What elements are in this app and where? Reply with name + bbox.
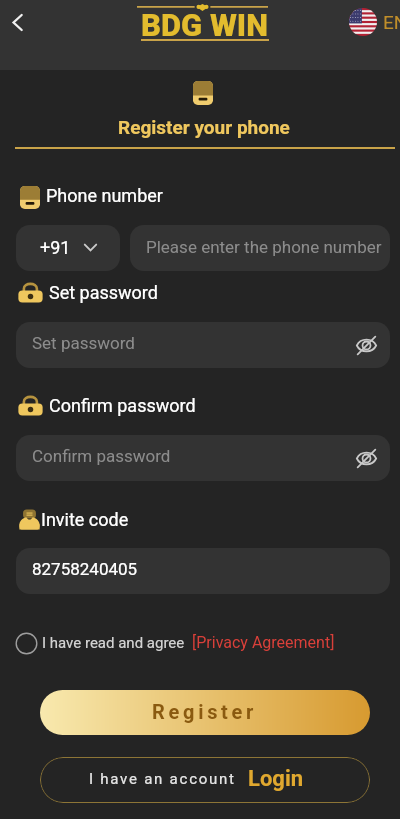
staticText: [Privacy Agreement] [192, 633, 335, 652]
button[interactable]: Language EN [349, 8, 400, 36]
button[interactable]: Set password [16, 322, 390, 368]
staticText: Please enter the phone number [146, 237, 382, 257]
button[interactable]: Back [0, 2, 37, 42]
staticText: 82758240405 [32, 559, 138, 579]
staticText: Register [152, 700, 258, 723]
staticText: BDG WIN [141, 7, 268, 43]
button[interactable]: I have an account [40, 757, 370, 803]
staticText: +91 [40, 237, 71, 258]
button[interactable]: Confirm password [16, 435, 390, 481]
staticText: Invite code [41, 509, 129, 530]
staticText: I have read and agree [42, 634, 185, 652]
staticText: I have an account [89, 770, 236, 788]
button[interactable]: 82758240405 [16, 548, 390, 594]
staticText: EN [383, 11, 400, 33]
staticText: Confirm password [32, 446, 171, 466]
staticText: Phone number [46, 185, 163, 206]
staticText: Login [248, 766, 304, 792]
staticText: Set password [49, 282, 158, 303]
button[interactable]: Register [40, 690, 370, 735]
staticText: Confirm password [49, 395, 196, 416]
button[interactable]: Please enter the phone number [130, 225, 390, 271]
button[interactable]: +91 [16, 225, 120, 271]
staticText: Register your phone [118, 116, 290, 138]
staticText: Set password [32, 333, 135, 353]
button[interactable]: I have read and agree [15, 632, 335, 655]
